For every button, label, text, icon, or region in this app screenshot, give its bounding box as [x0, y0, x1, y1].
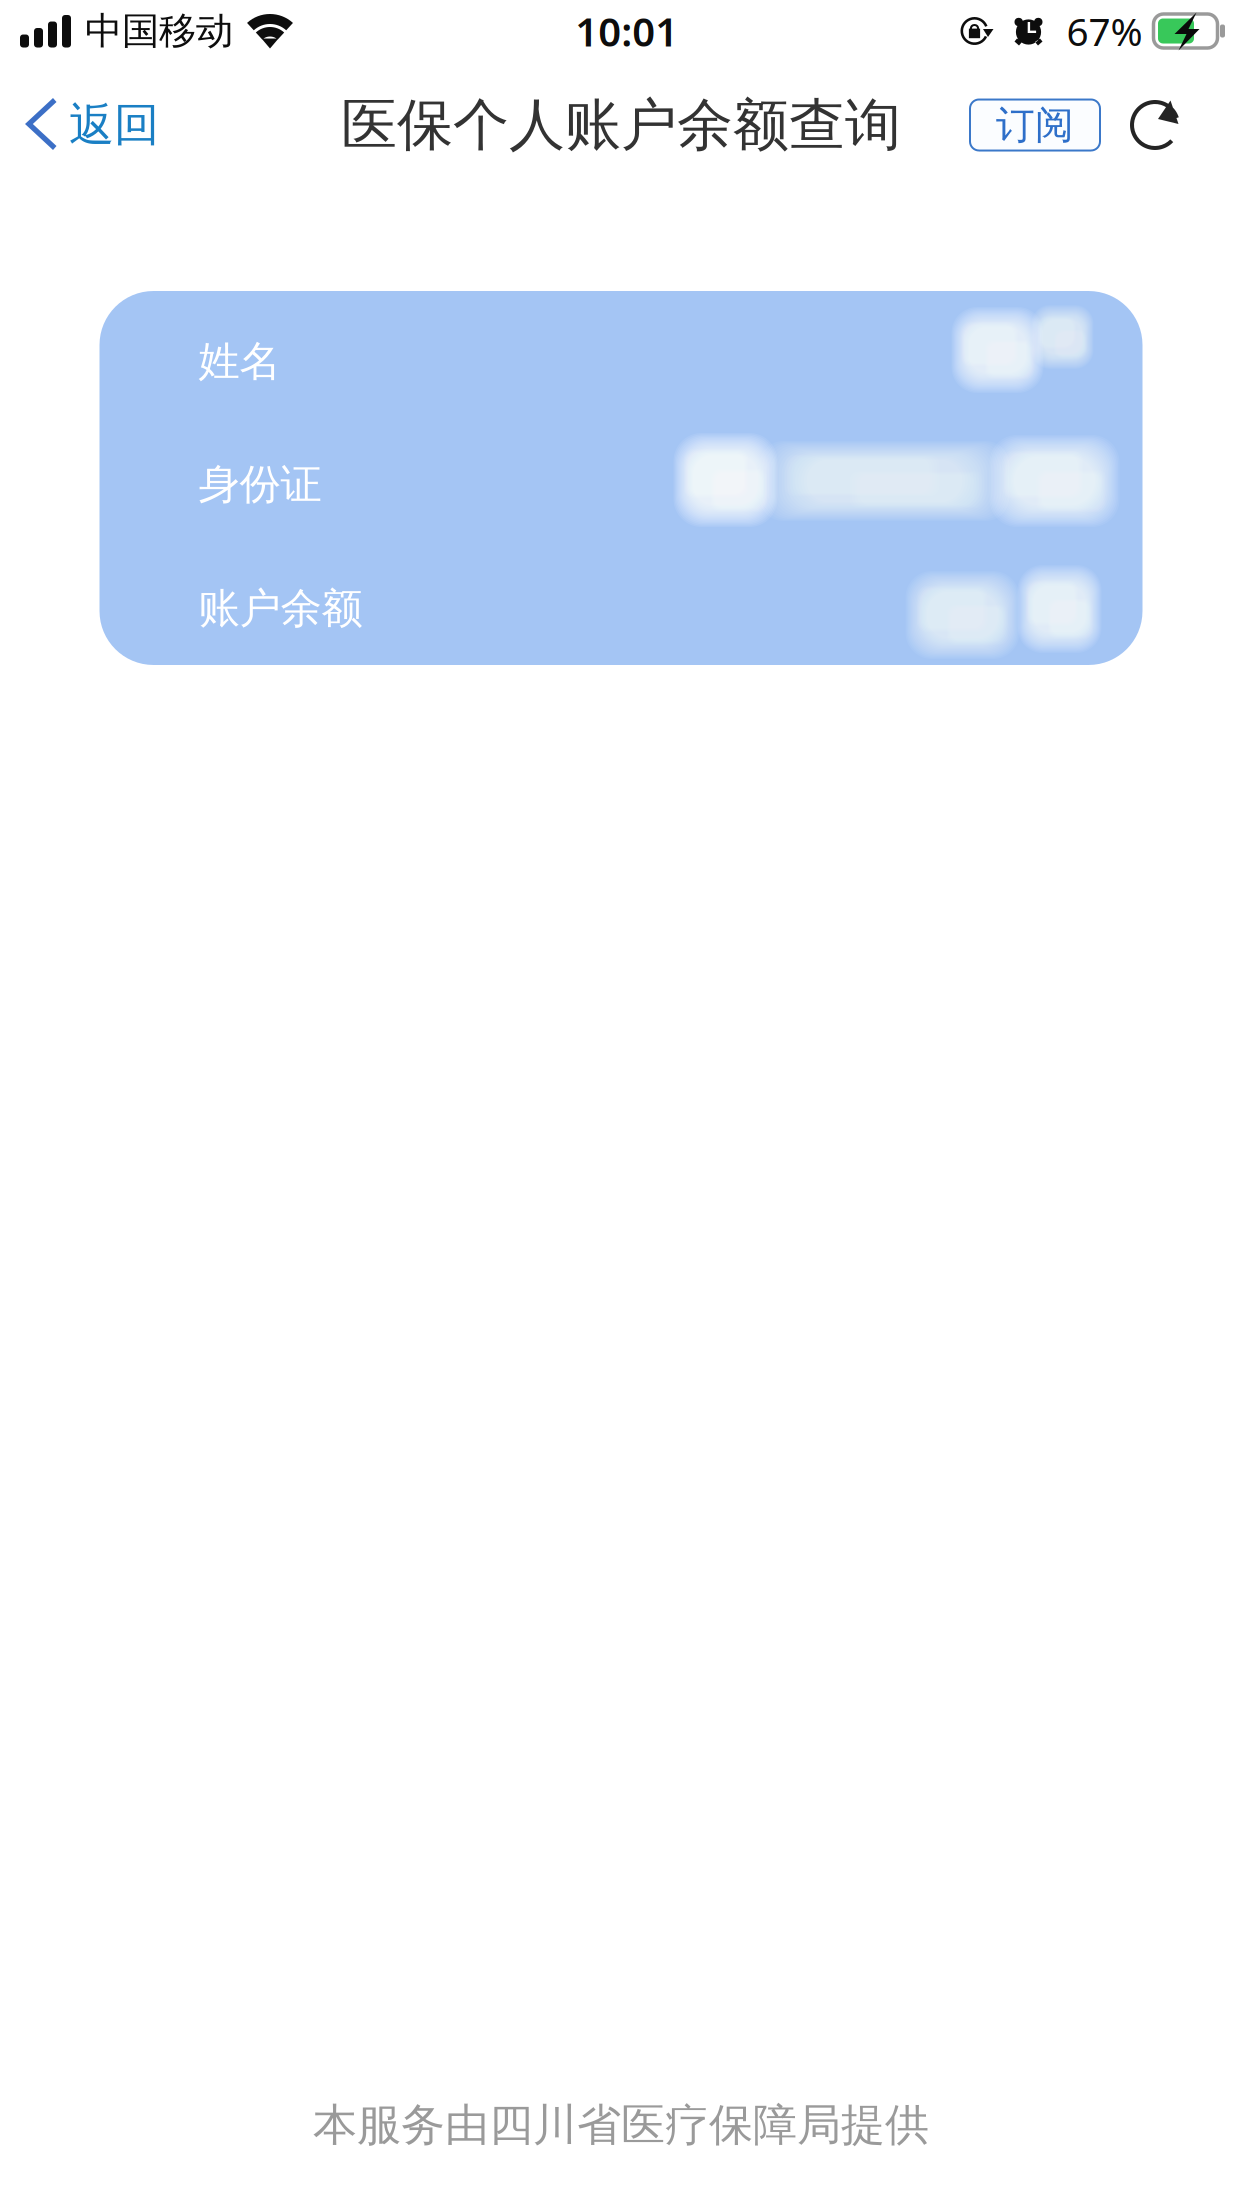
staticText: 身份证	[198, 459, 321, 510]
staticText: 姓名	[198, 336, 280, 387]
button[interactable]: 订阅	[970, 62, 1100, 188]
staticText: 本服务由四川省医疗保障局提供	[313, 2098, 929, 2152]
staticText: 中国移动	[85, 8, 233, 54]
button[interactable]: 返回	[0, 62, 181, 188]
staticText: 10:01	[575, 4, 678, 57]
button[interactable]: 刷新	[1112, 62, 1198, 188]
staticText: 订阅	[996, 101, 1074, 149]
staticText: 账户余额	[198, 583, 362, 634]
staticText: 医保个人账户余额查询	[341, 91, 901, 159]
staticText: 返回	[69, 97, 159, 153]
staticText: 67%	[1066, 5, 1142, 57]
